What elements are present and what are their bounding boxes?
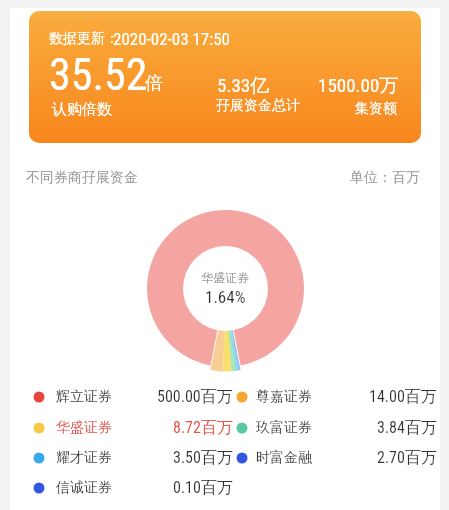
staticText: 2020-02-03 17:50	[113, 29, 231, 49]
staticText: 2.70百万	[377, 448, 437, 468]
staticText: 1.64%	[205, 287, 246, 307]
staticText: 华盛证券	[56, 419, 112, 437]
button[interactable]: 时富金融	[231, 444, 441, 472]
button[interactable]: 玖富证券	[231, 414, 441, 442]
staticText: 14.00百万	[369, 387, 437, 407]
staticText: 时富金融	[256, 449, 312, 467]
staticText: 耀才证券	[56, 449, 112, 467]
staticText: 3.50百万	[173, 448, 233, 468]
button[interactable]: 数据更新：	[29, 11, 421, 143]
button[interactable]	[146, 209, 305, 368]
staticText: 3.84百万	[377, 418, 437, 438]
staticText: 认购倍数	[52, 100, 112, 119]
staticText: 1500.00万	[318, 74, 399, 98]
staticText: 单位：百万	[350, 169, 420, 187]
staticText: 8.72百万	[173, 418, 233, 438]
staticText: 35.52	[49, 49, 148, 101]
staticText: 玖富证券	[256, 419, 312, 437]
button[interactable]: 华盛证券	[28, 414, 237, 442]
button[interactable]: 辉立证券	[28, 383, 237, 411]
staticText: 华盛证券	[201, 270, 249, 285]
staticText: 数据更新：	[49, 30, 119, 48]
staticText: 500.00百万	[157, 387, 233, 407]
staticText: 辉立证券	[56, 388, 112, 406]
staticText: 倍	[145, 72, 163, 95]
staticText: 尊嘉证券	[256, 388, 312, 406]
staticText: 不同券商孖展资金	[26, 169, 138, 187]
button[interactable]: 尊嘉证券	[231, 383, 441, 411]
staticText: 5.33亿	[217, 74, 270, 98]
staticText: 孖展资金总计	[216, 97, 300, 115]
staticText: 0.10百万	[173, 478, 233, 498]
button[interactable]: 信诚证券	[28, 474, 237, 502]
staticText: 集资额	[355, 100, 397, 118]
staticText: 信诚证券	[56, 479, 112, 497]
button[interactable]: 耀才证券	[28, 444, 237, 472]
